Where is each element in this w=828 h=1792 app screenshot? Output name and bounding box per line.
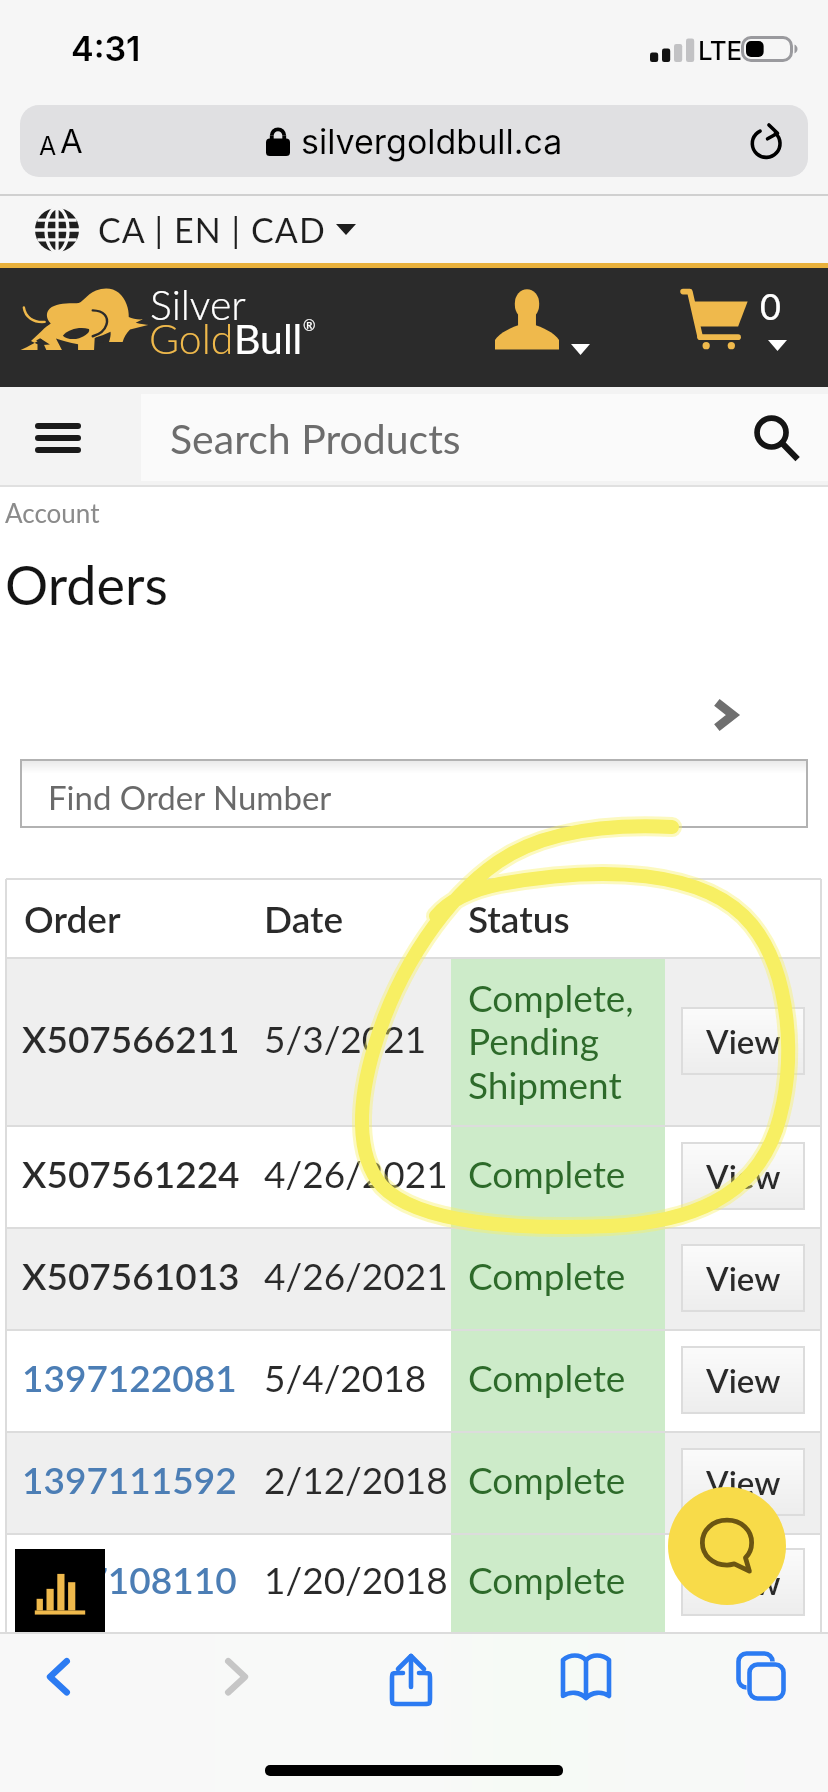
button[interactable]: Forward (217, 1648, 257, 1704)
staticText: View (706, 1462, 781, 1502)
staticText: ® (303, 316, 316, 334)
button[interactable]: Find Order Number (21, 760, 807, 827)
staticText: Complete (468, 1253, 626, 1297)
staticText: A (39, 131, 57, 161)
button[interactable]: CA | EN | CAD (0, 196, 828, 263)
staticText: 5/3/2021 (264, 1016, 427, 1060)
button[interactable]: Search Products (141, 394, 828, 481)
staticText: LTE (698, 35, 742, 66)
staticText: Complete (468, 1151, 626, 1195)
staticText: Complete, Pending Shipment (468, 975, 634, 1107)
button[interactable]: View (682, 1347, 804, 1413)
button[interactable]: Chat with us (668, 1487, 786, 1605)
staticText: 5/4/2018 (264, 1355, 427, 1399)
staticText: 4/26/2021 (264, 1253, 448, 1297)
button[interactable]: View (682, 1008, 804, 1074)
staticText: Silver (150, 280, 246, 329)
staticText: View (706, 1360, 781, 1400)
staticText: Bull (234, 314, 303, 363)
staticText: silvergoldbull.ca (301, 121, 563, 162)
button[interactable]: View (682, 1449, 804, 1515)
button[interactable]: Menu (0, 387, 141, 487)
button[interactable]: Reload (746, 120, 788, 162)
staticText: Complete (468, 1457, 626, 1501)
staticText: 1397111592 (22, 1457, 237, 1501)
button[interactable]: X507561013 (6, 1227, 821, 1329)
staticText: 1/20/2018 (264, 1557, 448, 1601)
button[interactable]: Next page (700, 690, 750, 740)
button[interactable]: Shopping cart (679, 280, 747, 375)
staticText: 2/12/2018 (264, 1457, 448, 1501)
staticText: Account (5, 497, 100, 528)
staticText: View (706, 1021, 781, 1061)
button[interactable]: 1397122081 (6, 1329, 821, 1431)
button[interactable]: Back (38, 1648, 78, 1704)
button[interactable]: View (682, 1143, 804, 1209)
staticText: CA | EN | CAD (98, 209, 326, 250)
staticText: Date (264, 896, 344, 940)
staticText: 1397108110 (22, 1557, 237, 1601)
staticText: X507566211 (22, 1016, 240, 1060)
button[interactable]: Search (756, 417, 798, 459)
staticText: Find Order Number (48, 777, 332, 817)
staticText: X507561013 (22, 1253, 240, 1297)
button[interactable]: 1397111592 (6, 1431, 821, 1533)
staticText: 4:31 (71, 28, 141, 69)
staticText: 4/26/2021 (264, 1151, 448, 1195)
button[interactable]: Address bar (20, 105, 808, 177)
button[interactable]: 1397108110 (6, 1533, 821, 1632)
staticText: View (706, 1156, 781, 1196)
button[interactable]: Account menu (495, 282, 590, 372)
staticText: View (706, 1258, 781, 1298)
button[interactable]: X507561224 (6, 1125, 821, 1227)
staticText: Status (468, 896, 570, 940)
button[interactable]: Share (391, 1648, 431, 1704)
button[interactable]: X507566211 (6, 957, 821, 1125)
button[interactable]: Tabs (741, 1648, 781, 1704)
staticText: View (706, 1562, 781, 1602)
staticText: A (60, 121, 83, 161)
staticText: Gold (149, 314, 234, 363)
button[interactable]: View (682, 1245, 804, 1311)
staticText: Complete (468, 1355, 626, 1399)
staticText: Complete (468, 1557, 626, 1601)
button[interactable]: View (682, 1549, 804, 1615)
staticText: 0 (760, 284, 781, 327)
staticText: Orders (5, 552, 168, 617)
staticText: Search Products (170, 414, 461, 463)
staticText: X507561224 (22, 1151, 240, 1195)
button[interactable]: Bookmarks (566, 1648, 606, 1704)
staticText: Order (24, 896, 121, 940)
staticText: 1397122081 (22, 1355, 237, 1399)
